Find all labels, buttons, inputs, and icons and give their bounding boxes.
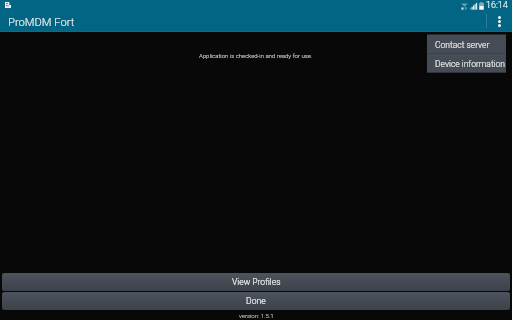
staticText: Application is checked-in and ready for … — [199, 52, 313, 59]
button[interactable]: Done — [2, 292, 510, 310]
button[interactable]: View Profiles — [2, 273, 510, 291]
button[interactable]: More options — [488, 12, 510, 30]
staticText: Contact server — [435, 40, 490, 50]
staticText: ProMDM Fort — [8, 16, 75, 29]
button[interactable]: Contact server — [427, 35, 506, 53]
staticText: Done — [246, 296, 266, 306]
staticText: Device information — [435, 59, 505, 69]
button[interactable]: Device information — [427, 54, 506, 72]
staticText: 16:14 — [486, 0, 508, 11]
staticText: version: 1.5.1 — [239, 312, 274, 319]
staticText: View Profiles — [232, 277, 281, 287]
